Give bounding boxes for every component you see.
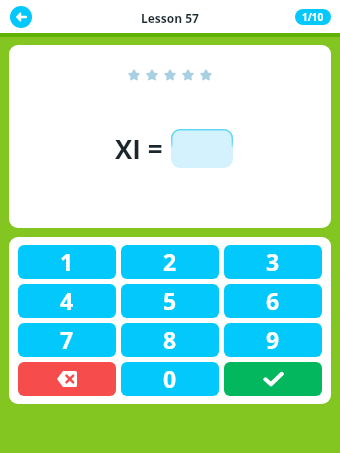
button[interactable]: Check answer: [224, 362, 322, 396]
staticText: 2: [163, 246, 177, 277]
button[interactable]: 8: [121, 323, 219, 357]
staticText: 1/10: [302, 10, 324, 24]
button[interactable]: 6: [224, 284, 322, 318]
button[interactable]: 2: [121, 245, 219, 279]
staticText: 0: [163, 363, 177, 394]
staticText: 5: [163, 285, 177, 316]
button[interactable]: Back: [10, 6, 32, 28]
staticText: 4: [60, 285, 74, 316]
button[interactable]: 1: [18, 245, 116, 279]
button[interactable]: 7: [18, 323, 116, 357]
button[interactable]: 9: [224, 323, 322, 357]
staticText: 8: [163, 324, 177, 355]
button[interactable]: 1/10: [295, 9, 331, 25]
button[interactable]: Backspace: [18, 362, 116, 396]
staticText: 9: [266, 324, 280, 355]
staticText: 7: [60, 324, 74, 355]
button[interactable]: 3: [224, 245, 322, 279]
button[interactable]: 4: [18, 284, 116, 318]
staticText: 3: [266, 246, 280, 277]
button[interactable]: Answer field: [171, 129, 233, 168]
staticText: XI =: [115, 131, 163, 166]
staticText: 6: [266, 285, 280, 316]
button[interactable]: 0: [121, 362, 219, 396]
staticText: Lesson 57: [141, 10, 199, 26]
staticText: 1: [60, 246, 74, 277]
button[interactable]: 5: [121, 284, 219, 318]
